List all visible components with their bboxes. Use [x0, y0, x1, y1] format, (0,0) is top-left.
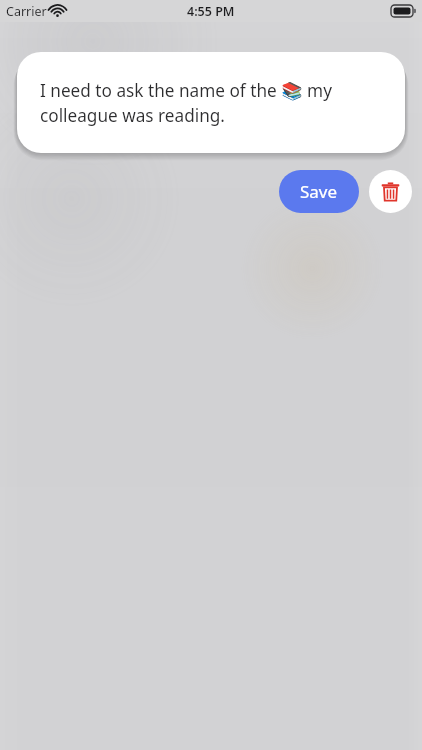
button[interactable]: Save: [279, 170, 359, 213]
staticText: Save: [300, 180, 338, 203]
button[interactable]: I need to ask the name of the 📚 my colle…: [17, 52, 405, 153]
button[interactable]: Delete: [369, 170, 412, 213]
staticText: Carrier: [6, 3, 47, 20]
staticText: I need to ask the name of the 📚 my colle…: [40, 79, 379, 127]
staticText: 4:55 PM: [187, 3, 235, 20]
